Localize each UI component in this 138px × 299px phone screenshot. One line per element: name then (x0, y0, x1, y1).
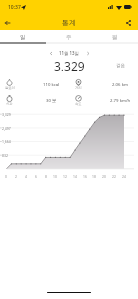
staticText: 속도 (75, 102, 82, 106)
staticText: 4 (25, 174, 27, 178)
staticText: 30 분 (46, 97, 57, 103)
button[interactable]: Back (0, 15, 15, 30)
staticText: 통계 (62, 18, 76, 27)
staticText: 주 (66, 34, 72, 41)
staticText: 6 (35, 174, 37, 178)
staticText: 2 (15, 174, 17, 178)
staticText: 24 (122, 174, 126, 178)
staticText: 일 (20, 34, 26, 41)
staticText: 11월 13일 (59, 50, 79, 56)
button[interactable]: 월 (92, 30, 138, 44)
staticText: 10 (53, 174, 57, 178)
button[interactable]: Share (121, 15, 136, 30)
staticText: 0 (5, 174, 7, 178)
staticText: 10:37 (8, 4, 21, 11)
staticText: 시간 (6, 102, 13, 106)
button[interactable]: 속도 (69, 92, 138, 108)
staticText: 걸음 (116, 63, 125, 69)
staticText: 2.79 km/h (110, 97, 131, 103)
staticText: 월 (112, 34, 118, 41)
staticText: 3,329 (54, 58, 85, 71)
button[interactable]: Previous day (45, 48, 56, 59)
staticText: 18 (92, 174, 96, 178)
staticText: 16 (83, 174, 87, 178)
staticText: 1,664 (2, 139, 11, 144)
button[interactable]: 시간 (0, 92, 69, 108)
staticText: 2,497 (2, 126, 11, 131)
staticText: 14 (73, 174, 77, 178)
button[interactable]: 칼로리 (0, 76, 69, 92)
button[interactable]: 일 (0, 30, 46, 44)
staticText: 12 (63, 174, 67, 178)
staticText: 20 (102, 174, 106, 178)
staticText: 832 (2, 153, 8, 158)
staticText: 110 kcal (43, 81, 60, 87)
staticText: 22 (112, 174, 116, 178)
button[interactable]: Next day (82, 48, 93, 59)
staticText: 3,329 (2, 112, 11, 117)
button[interactable]: 주 (46, 30, 92, 44)
staticText: 8 (45, 174, 47, 178)
button[interactable]: 거리 (69, 76, 138, 92)
staticText: 2.06 km (112, 81, 128, 87)
staticText: 칼로리 (5, 86, 15, 90)
staticText: 거리 (75, 86, 82, 90)
